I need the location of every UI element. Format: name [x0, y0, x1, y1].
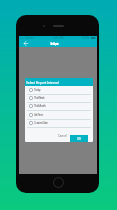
staticText: This Week [34, 96, 45, 100]
staticText: Today [34, 88, 41, 92]
button[interactable]: Today [25, 86, 93, 94]
button[interactable]: OK [70, 135, 88, 142]
staticText: View Reports [50, 41, 58, 46]
staticText: Select Report Interval [26, 80, 59, 85]
button[interactable]: Back [21, 39, 30, 47]
staticText: OK [77, 137, 82, 141]
button[interactable]: Home [53, 177, 64, 188]
staticText: 100% [82, 36, 90, 39]
staticText: 9:41 AM [53, 36, 64, 39]
button[interactable]: This Month [25, 102, 93, 110]
staticText: This Month [34, 104, 46, 108]
button[interactable]: Life Time [25, 111, 93, 119]
button[interactable]: Cancel [54, 132, 70, 140]
staticText: Custom Date [34, 121, 48, 125]
button[interactable]: This Week [25, 94, 93, 102]
staticText: Carrier [25, 36, 35, 39]
staticText: Cancel [58, 134, 67, 138]
button[interactable]: Custom Date [25, 119, 93, 127]
staticText: Life Time [34, 113, 43, 117]
